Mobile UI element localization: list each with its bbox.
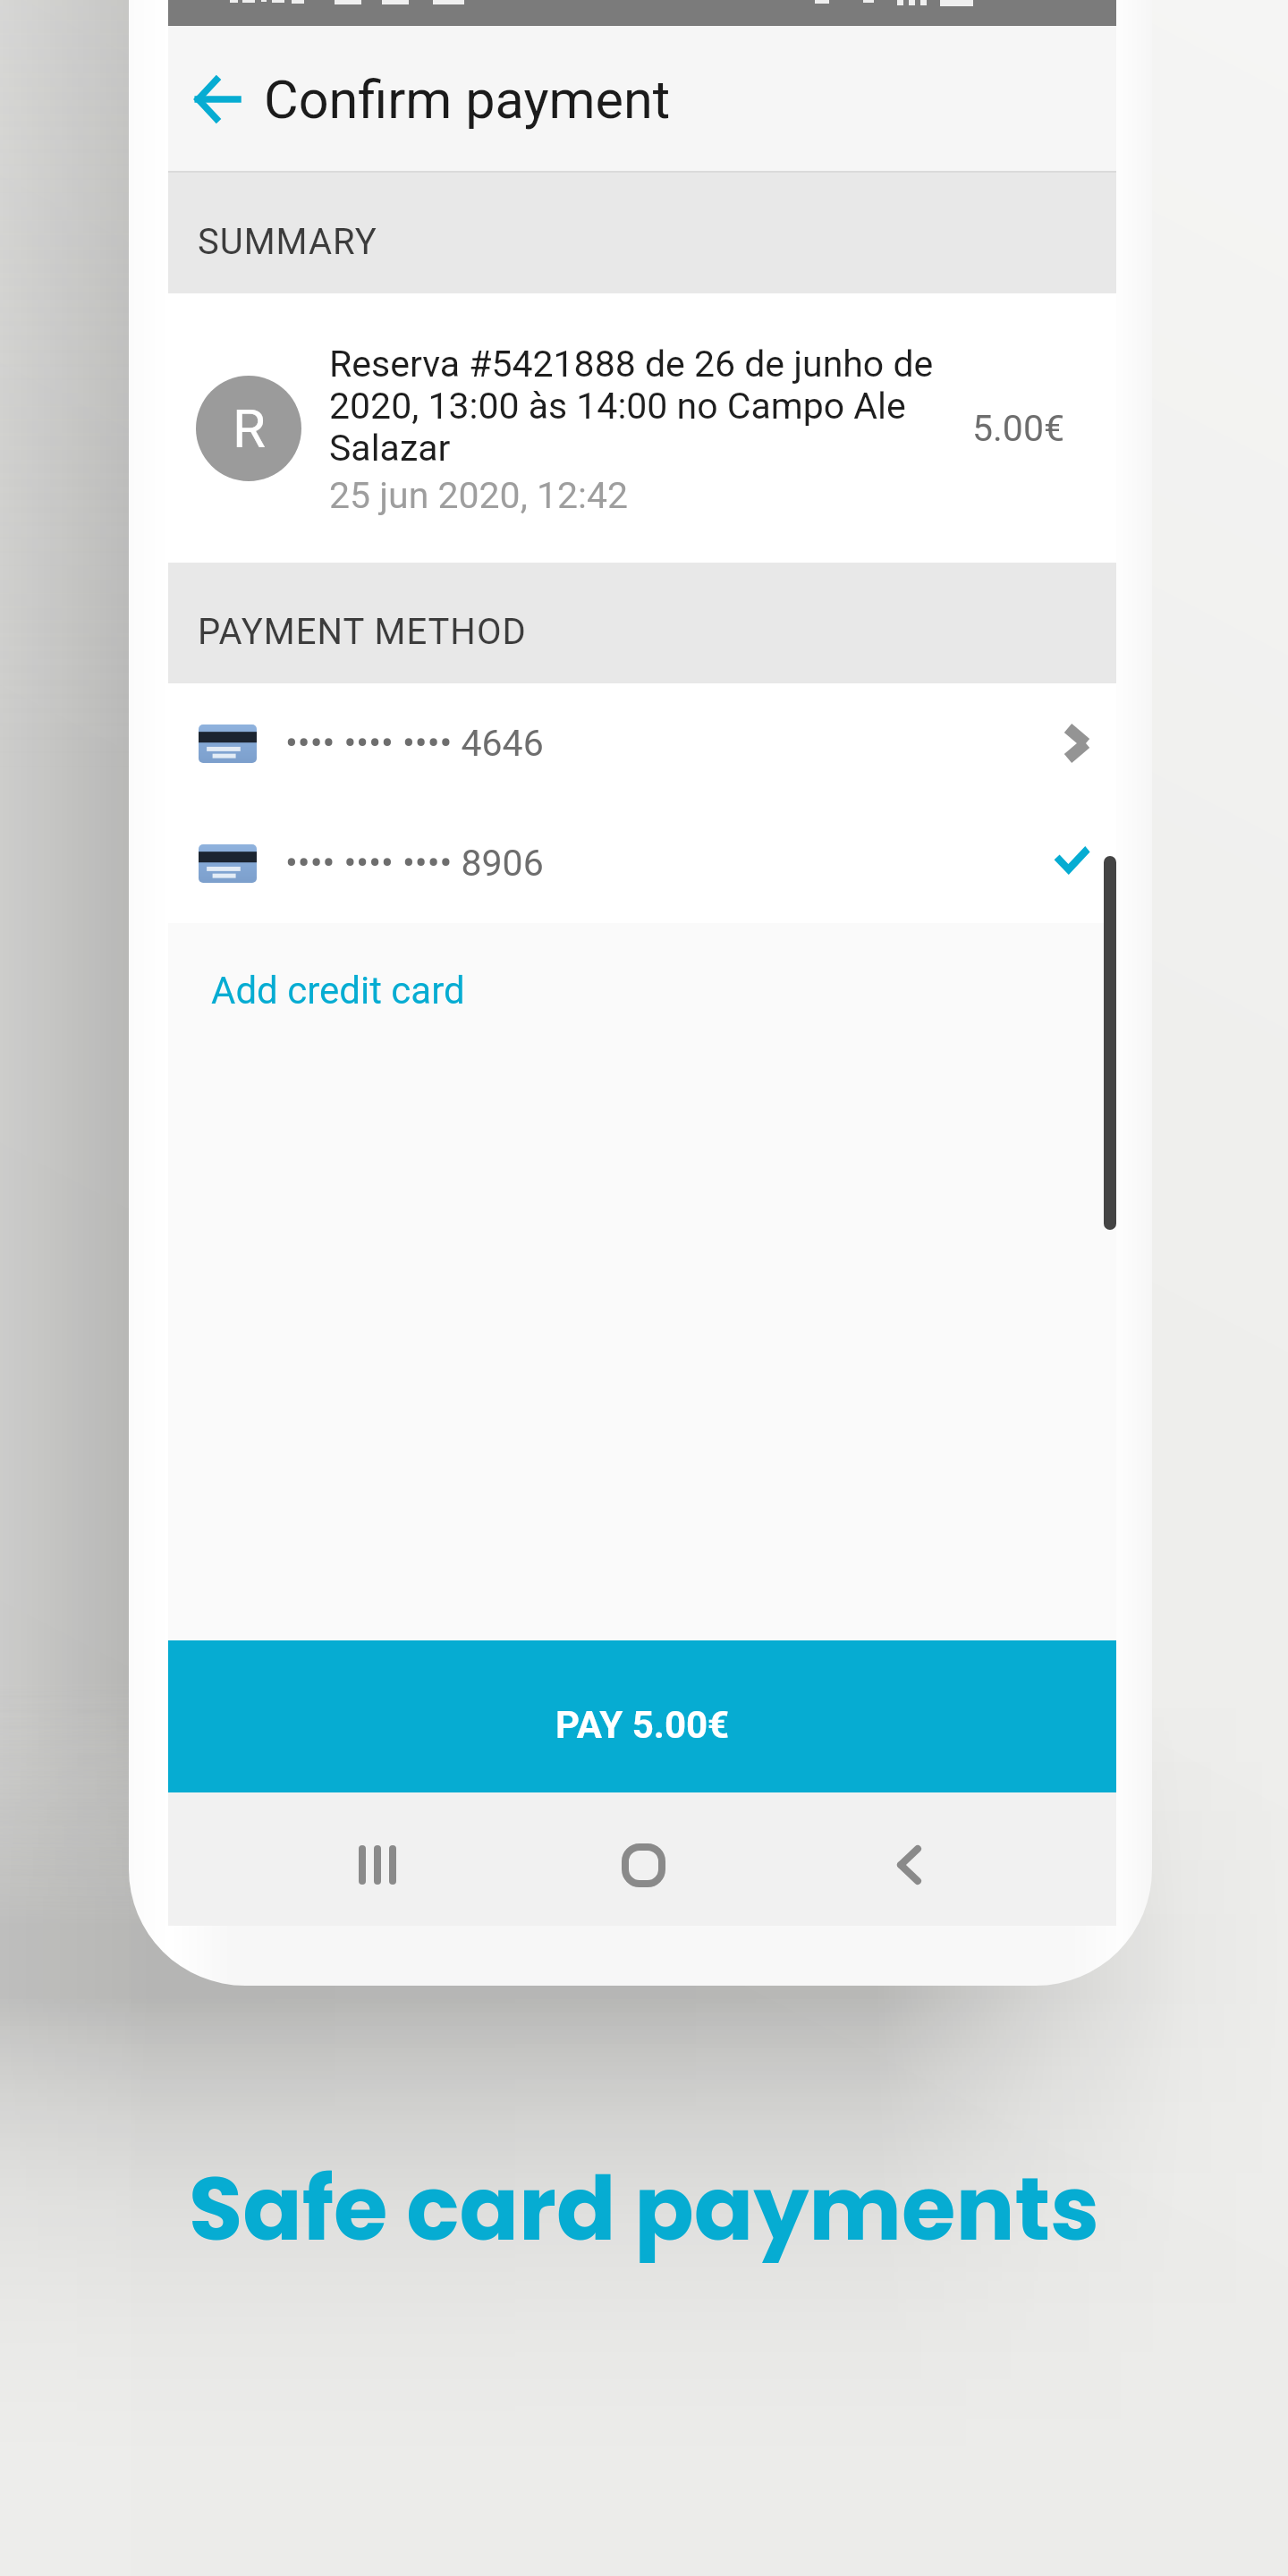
staticText: Add credit card (211, 969, 465, 1013)
button[interactable]: Home (589, 1811, 697, 1919)
staticText: Reserva #5421888 de 26 de junho de 2020,… (329, 343, 946, 470)
staticText: 25 jun 2020, 12:42 (329, 474, 628, 517)
staticText: Safe card payments (0, 2148, 1288, 2270)
button[interactable]: Back (174, 56, 259, 142)
button[interactable]: Recent apps (324, 1811, 431, 1919)
staticText: SUMMARY (198, 221, 377, 263)
staticText: •••• •••• •••• 8906 (285, 842, 544, 885)
staticText: 5.00€ (972, 407, 1064, 450)
button[interactable]: •••• •••• •••• 8906 (168, 803, 1116, 923)
staticText: R (233, 397, 266, 460)
button[interactable]: R (168, 293, 1116, 563)
button[interactable]: •••• •••• •••• 4646 (168, 683, 1116, 803)
staticText: PAY 5.00€ (555, 1703, 730, 1747)
staticText: PAYMENT METHOD (198, 611, 527, 653)
button[interactable]: Add credit card (168, 923, 1116, 1073)
staticText: Confirm payment (264, 69, 671, 131)
staticText: •••• •••• •••• 4646 (285, 722, 544, 765)
button[interactable]: Back (855, 1811, 962, 1919)
button[interactable]: PAY 5.00€ (168, 1640, 1116, 1792)
